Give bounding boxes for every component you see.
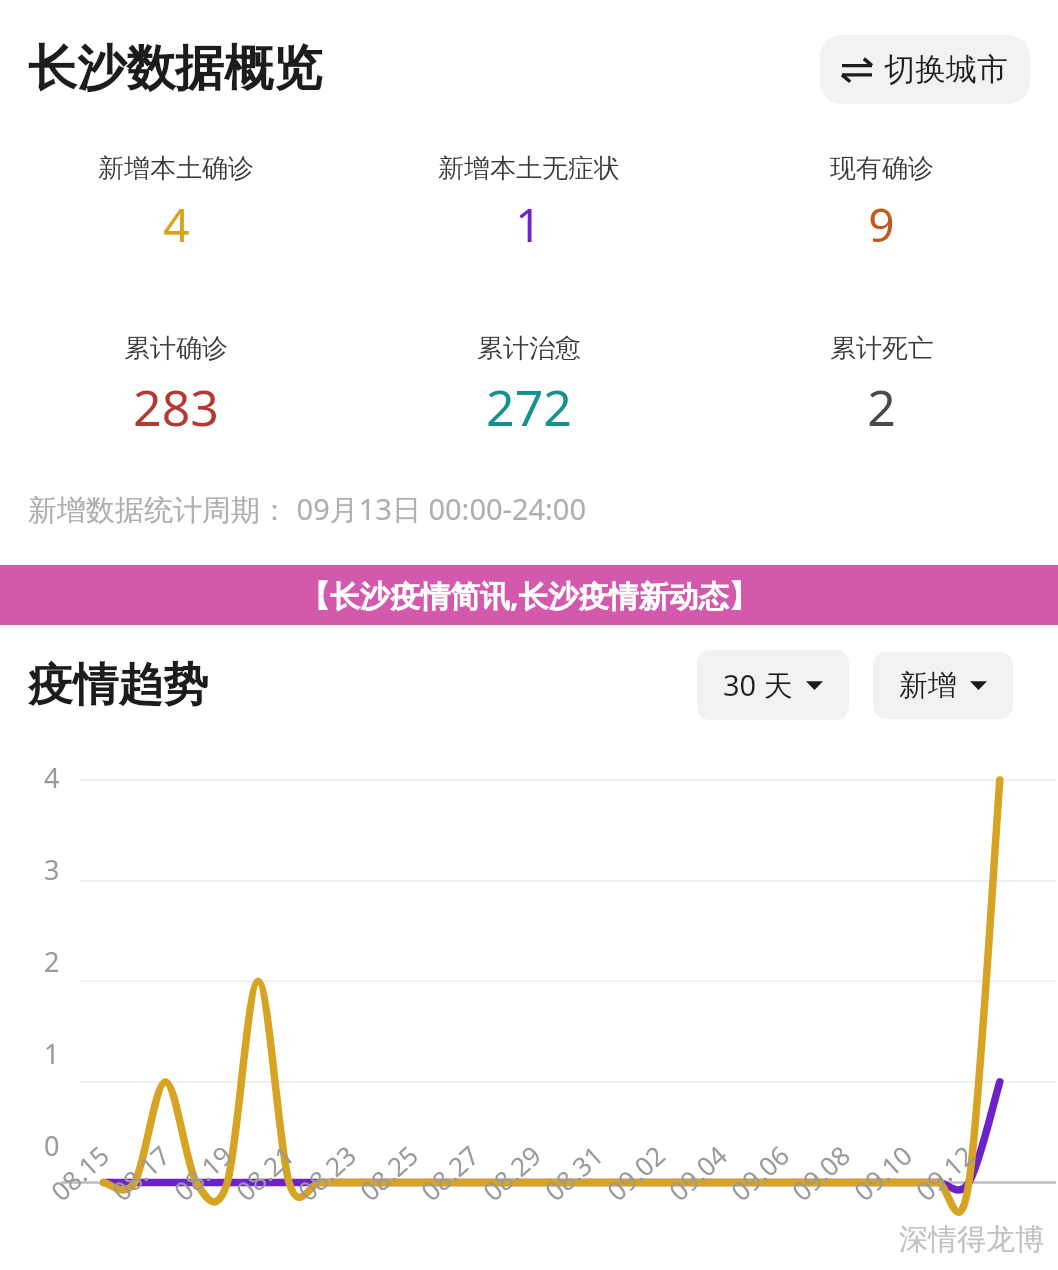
staticText: 9 — [868, 193, 895, 256]
staticText: 新增本土确诊 — [98, 152, 254, 185]
staticText: 【长沙疫情简讯,长沙疫情新动态】 — [300, 575, 759, 616]
staticText: 3 — [44, 851, 1058, 888]
staticText: 4 — [163, 193, 190, 256]
staticText: 283 — [133, 373, 219, 441]
staticText: 现有确诊 — [830, 152, 934, 185]
staticText: 272 — [486, 373, 572, 441]
staticText: 2 — [867, 373, 896, 441]
staticText: 累计死亡 — [830, 332, 934, 365]
staticText: 4 — [44, 759, 1058, 796]
staticText: 09.06 — [723, 1137, 796, 1208]
staticText: 08.19 — [166, 1137, 239, 1208]
staticText: 09.08 — [784, 1137, 857, 1208]
staticText: 08.31 — [537, 1137, 610, 1208]
staticText: 08.25 — [352, 1137, 425, 1208]
staticText: 疫情趋势 — [28, 657, 208, 714]
staticText: 切换城市 — [884, 50, 1008, 89]
staticText: 08.27 — [413, 1137, 486, 1208]
staticText: 09.10 — [846, 1137, 919, 1208]
staticText: 长沙数据概览 — [28, 38, 322, 100]
staticText: 累计确诊 — [124, 332, 228, 365]
button[interactable]: 切换城市 — [820, 35, 1030, 104]
staticText: 09.12 — [908, 1137, 981, 1208]
staticText: 1 — [515, 193, 542, 256]
staticText: 08.23 — [290, 1137, 363, 1208]
staticText: 08.17 — [104, 1137, 177, 1208]
staticText: 09.02 — [599, 1137, 672, 1208]
button[interactable]: 新增 — [873, 652, 1013, 719]
staticText: 0 — [44, 1127, 1058, 1164]
staticText: 1 — [44, 1035, 1058, 1072]
staticText: 08.29 — [475, 1137, 548, 1208]
staticText: 30 天 — [723, 665, 793, 705]
staticText: 09.04 — [661, 1137, 734, 1208]
staticText: 深情得龙博 — [899, 1221, 1044, 1258]
staticText: 新增本土无症状 — [438, 152, 620, 185]
staticText: 08.15 — [43, 1137, 116, 1208]
staticText: 累计治愈 — [477, 332, 581, 365]
staticText: 新增数据统计周期： 09月13日 00:00-24:00 — [28, 489, 587, 529]
staticText: 2 — [44, 943, 1058, 980]
staticText: 08.21 — [228, 1137, 301, 1208]
button[interactable]: 30 天 — [697, 650, 849, 720]
staticText: 新增 — [899, 667, 957, 704]
